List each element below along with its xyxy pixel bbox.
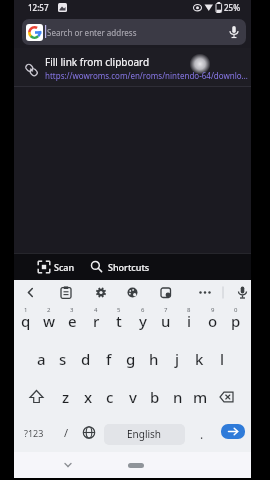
staticText: 7 <box>164 306 168 314</box>
staticText: g <box>126 349 136 369</box>
staticText: c <box>106 387 114 407</box>
button[interactable]: b <box>144 386 166 408</box>
button[interactable]: ?123 <box>22 425 46 440</box>
staticText: l <box>220 349 225 369</box>
button[interactable]: y <box>132 310 154 332</box>
button[interactable]: o <box>202 310 224 332</box>
staticText: 0 <box>234 306 238 314</box>
staticText: e <box>68 311 77 331</box>
staticText: . <box>200 426 204 442</box>
button[interactable] <box>30 254 85 280</box>
button[interactable] <box>78 424 100 445</box>
button[interactable]: s <box>52 348 74 370</box>
staticText: u <box>161 311 171 331</box>
staticText: Search or enter address <box>47 27 137 38</box>
button[interactable] <box>24 386 50 408</box>
staticText: https://wowroms.com/en/roms/nintendo-64/… <box>45 70 249 81</box>
button[interactable] <box>228 280 256 305</box>
staticText: k <box>195 349 204 369</box>
staticText: i <box>187 311 192 331</box>
staticText: j <box>175 349 180 369</box>
staticText: w <box>43 311 56 331</box>
button[interactable]: v <box>122 386 144 408</box>
button[interactable] <box>14 48 251 87</box>
button[interactable] <box>228 19 248 45</box>
button[interactable]: p <box>225 310 247 332</box>
staticText: a <box>37 349 46 369</box>
staticText: 8 <box>187 306 191 314</box>
staticText: 9 <box>211 306 215 314</box>
button[interactable]: z <box>55 386 77 408</box>
button[interactable]: h <box>143 348 165 370</box>
button[interactable]: f <box>98 348 120 370</box>
button[interactable]: r <box>85 310 107 332</box>
button[interactable]: i <box>178 310 200 332</box>
staticText: s <box>59 349 67 369</box>
staticText: v <box>129 387 137 407</box>
button[interactable]: l <box>211 348 233 370</box>
button[interactable]: u <box>155 310 177 332</box>
button[interactable]: t <box>108 310 130 332</box>
staticText: 3 <box>70 306 74 314</box>
staticText: / <box>64 425 69 440</box>
button[interactable]: d <box>75 348 97 370</box>
staticText: 1 <box>24 306 28 314</box>
staticText: ?123 <box>24 427 44 439</box>
button[interactable] <box>52 280 80 305</box>
button[interactable] <box>190 280 218 305</box>
button[interactable]: a <box>30 348 52 370</box>
staticText: Scan <box>54 261 75 273</box>
staticText: z <box>62 387 70 407</box>
button[interactable]: q <box>15 310 37 332</box>
staticText: x <box>84 387 93 407</box>
staticText: Fill link from clipboard <box>45 55 150 68</box>
staticText: 25% <box>224 2 240 13</box>
staticText: b <box>150 387 160 407</box>
staticText: English <box>127 427 162 441</box>
button[interactable] <box>90 254 160 280</box>
staticText: 4 <box>94 306 98 314</box>
staticText: q <box>21 311 31 331</box>
staticText: y <box>139 311 147 331</box>
staticText: n <box>173 387 183 407</box>
button[interactable]: m <box>189 386 211 408</box>
staticText: m <box>193 387 208 407</box>
staticText: p <box>231 311 241 331</box>
staticText: f <box>106 349 112 369</box>
button[interactable] <box>120 455 150 475</box>
button[interactable]: w <box>38 310 60 332</box>
staticText: t <box>116 311 122 331</box>
button[interactable]: / <box>58 423 74 441</box>
button[interactable] <box>120 280 148 305</box>
staticText: o <box>208 311 218 331</box>
button[interactable]: g <box>120 348 142 370</box>
button[interactable]: k <box>188 348 210 370</box>
staticText: h <box>149 349 159 369</box>
button[interactable] <box>221 424 245 439</box>
staticText: Shortcuts <box>108 261 150 273</box>
button[interactable]: c <box>99 386 121 408</box>
button[interactable] <box>215 386 241 408</box>
button[interactable]: Scan <box>54 259 84 274</box>
staticText: d <box>81 349 91 369</box>
button[interactable] <box>104 424 185 445</box>
button[interactable]: n <box>167 386 189 408</box>
staticText: r <box>93 311 100 331</box>
button[interactable] <box>86 280 114 305</box>
button[interactable]: x <box>77 386 99 408</box>
staticText: 6 <box>141 306 145 314</box>
staticText: 2 <box>47 306 51 314</box>
button[interactable]: . <box>196 424 208 444</box>
button[interactable]: Shortcuts <box>108 259 158 274</box>
button[interactable] <box>55 455 81 475</box>
button[interactable]: j <box>166 348 188 370</box>
button[interactable] <box>154 280 182 305</box>
staticText: 5 <box>117 306 121 314</box>
button[interactable] <box>22 19 246 45</box>
button[interactable] <box>16 280 44 305</box>
button[interactable]: e <box>61 310 83 332</box>
staticText: 12:57 <box>28 2 49 13</box>
